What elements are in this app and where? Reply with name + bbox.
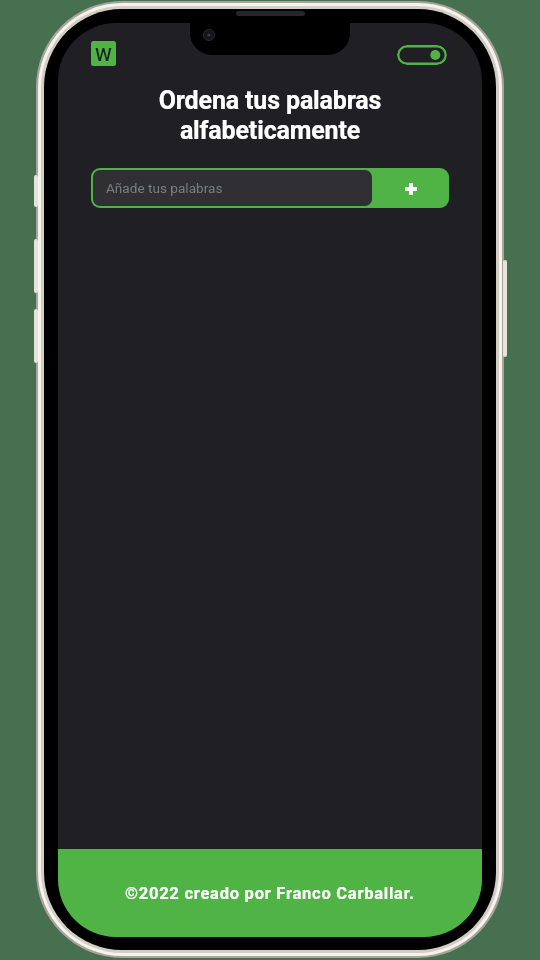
button[interactable]: ©2022 creado por Franco Carballar. xyxy=(58,849,482,937)
button[interactable]: Añade tus palabras xyxy=(93,170,372,206)
button[interactable]: Toggle dark mode xyxy=(397,45,447,65)
button[interactable]: Wordly logo xyxy=(91,41,116,66)
staticText: Ordena tus palabras alfabeticamente xyxy=(86,86,454,145)
button[interactable]: Add word xyxy=(372,170,447,206)
staticText: W xyxy=(95,43,112,65)
staticText: Añade tus palabras xyxy=(106,180,223,196)
staticText: ©2022 creado por Franco Carballar. xyxy=(125,884,415,903)
